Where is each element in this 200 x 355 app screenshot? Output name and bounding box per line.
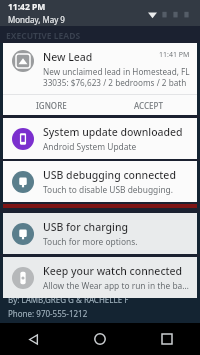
staticText: Android System Update [43, 141, 137, 152]
staticText: ACCEPT [134, 100, 163, 111]
staticText: Monday, May 9 [8, 14, 65, 25]
button[interactable]: Home [66, 323, 133, 355]
staticText: Phone: 970-555-1212 [8, 308, 88, 319]
button[interactable]: Keep your watch connected [3, 257, 197, 298]
button[interactable]: USB debugging connected [3, 161, 197, 202]
button[interactable]: System update downloaded [3, 118, 197, 159]
button[interactable]: New Lead [3, 43, 197, 115]
button[interactable]: Back [0, 323, 66, 355]
staticText: 33035: $76,623 / 2 bedrooms / 2 bath [43, 77, 187, 88]
staticText: USB for charging [43, 220, 128, 234]
staticText: Touch to disable USB debugging. [43, 184, 174, 195]
staticText: Touch for more options. [43, 236, 138, 247]
staticText: Allow the Wear app to run in the backgro… [43, 280, 190, 291]
staticText: New Lead [43, 50, 93, 64]
button[interactable]: IGNORE [3, 95, 100, 115]
staticText: By: LAMB,GREG G & RACHELLE F [8, 294, 129, 305]
staticText: USB debugging connected [43, 168, 176, 182]
staticText: IGNORE [36, 100, 67, 111]
staticText: 11:42 PM [8, 1, 46, 13]
staticText: Email: lamb@lamb.com [8, 322, 97, 333]
button[interactable]: Menu [168, 274, 190, 296]
staticText: System update downloaded [43, 125, 183, 139]
staticText: 11:41 PM [159, 50, 190, 60]
staticText: Rockville, MD 20854 [8, 280, 83, 291]
button[interactable]: USB for charging [3, 213, 197, 254]
staticText: 4 Hartman Ct [8, 266, 59, 277]
button[interactable]: Recents [133, 323, 200, 355]
staticText: EXECUTIVE LEADS [6, 30, 81, 42]
staticText: Keep your watch connected [43, 264, 183, 278]
staticText: New unclaimed lead in Homestead, FL [43, 66, 190, 77]
button[interactable]: ACCEPT [100, 95, 197, 115]
